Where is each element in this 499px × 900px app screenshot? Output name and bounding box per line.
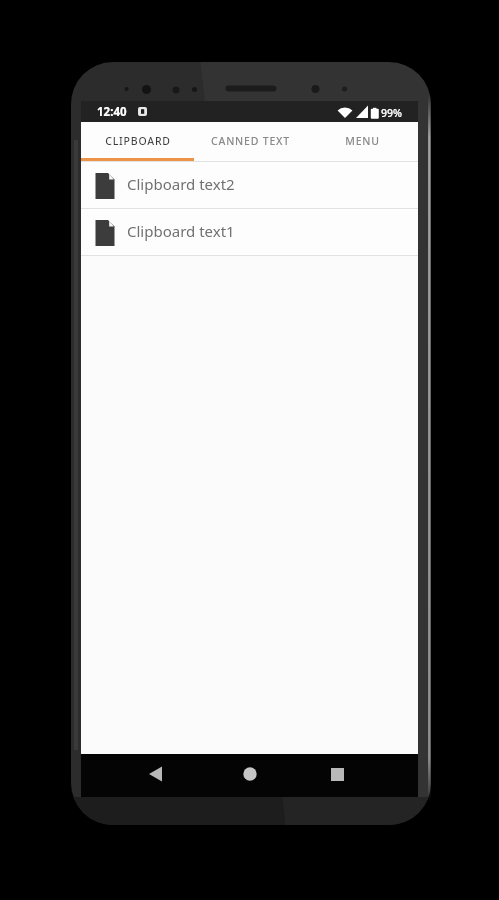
button[interactable] [234,758,266,790]
staticText: CLIPBOARD [105,134,171,148]
button[interactable]: CLIPBOARD [81,122,194,162]
button[interactable]: Clipboard text2 [81,162,418,208]
staticText: Clipboard text2 [127,174,235,194]
staticText: MENU [345,134,380,148]
staticText: 12:40 [97,104,127,120]
button[interactable] [321,758,353,790]
staticText: CANNED TEXT [211,134,290,148]
button[interactable]: CANNED TEXT [194,122,306,162]
button[interactable]: MENU [306,122,418,162]
button[interactable] [140,758,172,790]
button[interactable]: Clipboard text1 [81,209,418,255]
staticText: 99% [381,106,402,120]
staticText: Clipboard text1 [127,221,235,241]
